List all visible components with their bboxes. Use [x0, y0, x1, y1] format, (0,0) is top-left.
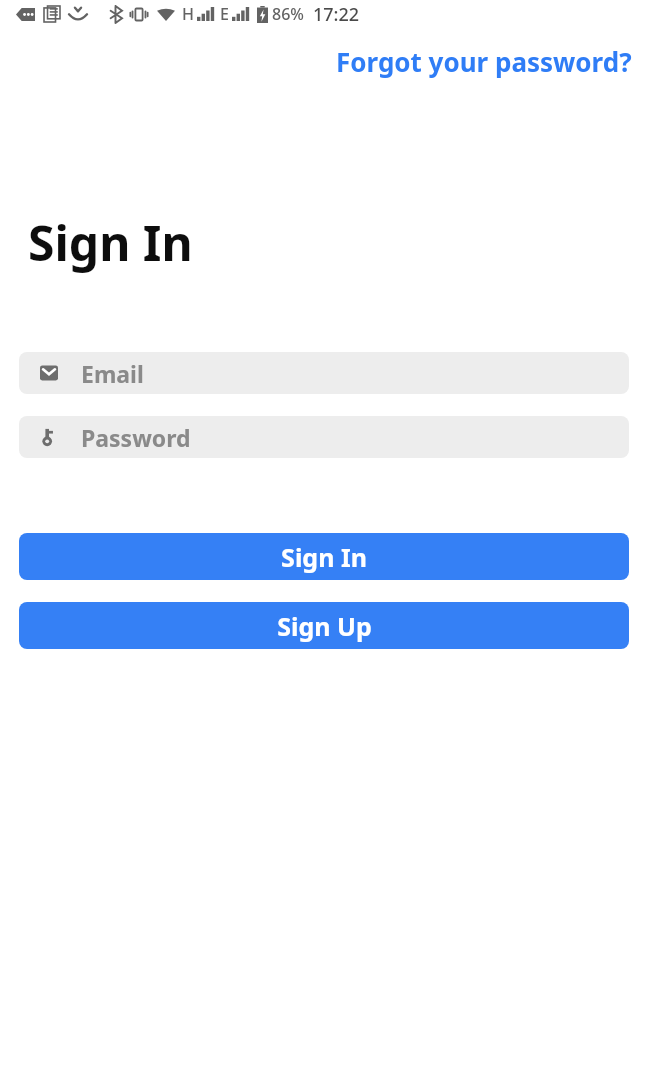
staticText: Forgot your password? — [336, 44, 632, 79]
button[interactable]: Password — [19, 416, 629, 458]
staticText: H — [182, 3, 194, 25]
button[interactable]: Sign Up — [19, 602, 629, 649]
staticText: 86% — [272, 3, 304, 25]
button[interactable]: Email — [19, 352, 629, 394]
staticText: Sign In — [28, 210, 193, 275]
staticText: Sign Up — [277, 609, 372, 643]
staticText: Sign In — [281, 540, 367, 574]
button[interactable]: Forgot your password? — [320, 38, 648, 85]
staticText: 17:22 — [313, 2, 360, 27]
staticText: E — [220, 3, 229, 25]
staticText: Password — [81, 422, 191, 453]
staticText: Email — [81, 358, 144, 389]
button[interactable]: Sign In — [19, 533, 629, 580]
